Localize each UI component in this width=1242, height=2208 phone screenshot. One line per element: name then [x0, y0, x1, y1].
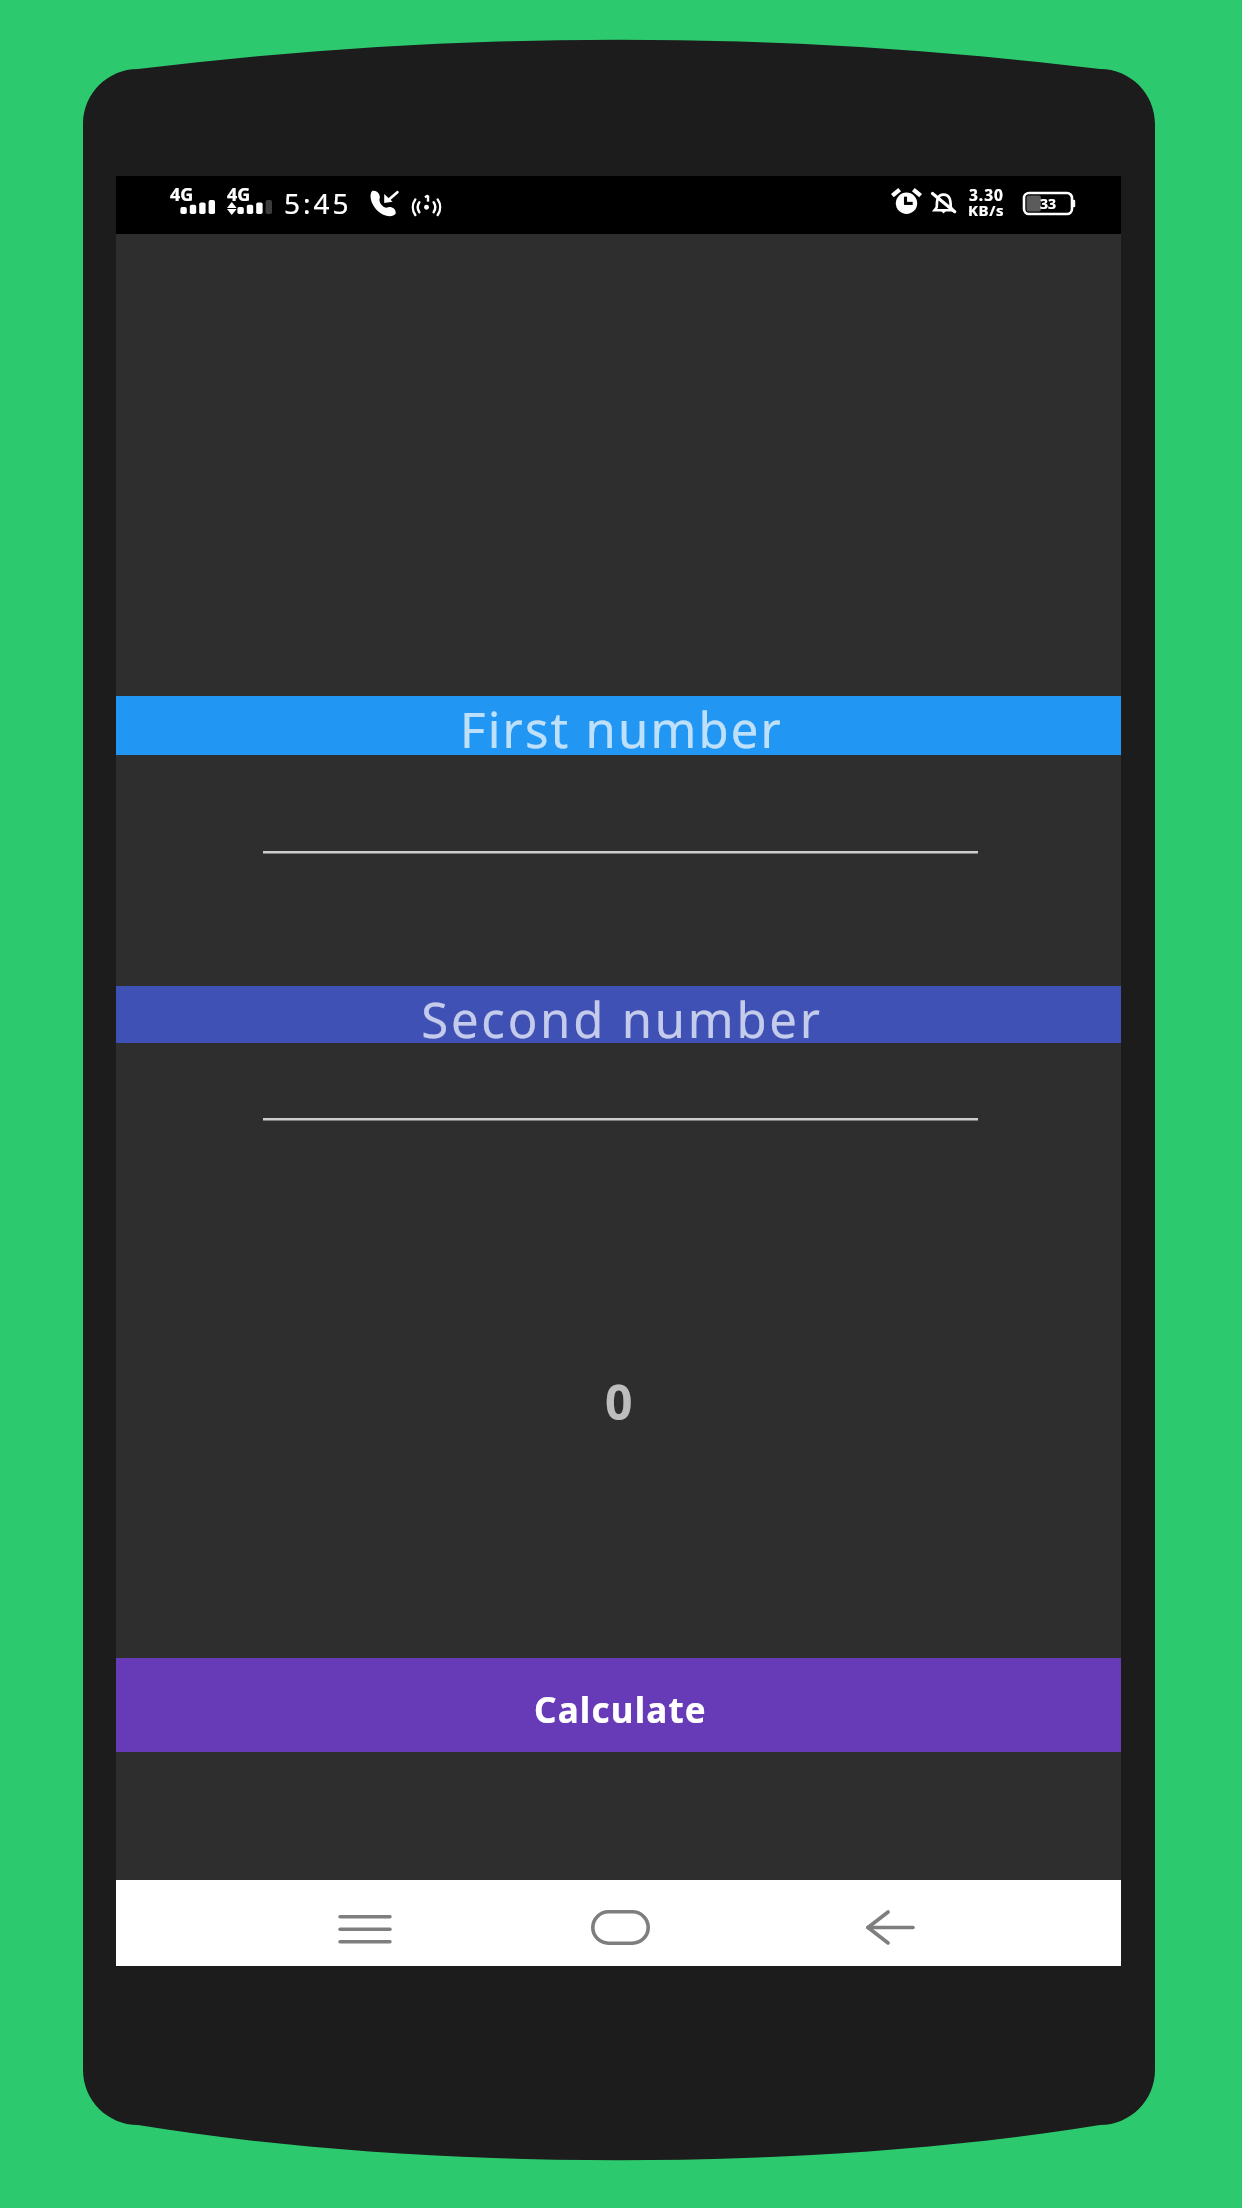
- button[interactable]: Second number: [116, 986, 1121, 1043]
- button[interactable]: Second number input: [263, 1062, 978, 1124]
- staticText: 5:45: [284, 184, 352, 222]
- staticText: KB/s: [968, 200, 1005, 220]
- staticText: Calculate: [534, 1686, 707, 1734]
- staticText: 0: [605, 1369, 633, 1434]
- button[interactable]: Home: [540, 1884, 700, 1970]
- staticText: 4G: [227, 182, 251, 207]
- staticText: 33: [1040, 194, 1057, 213]
- staticText: 4G: [170, 182, 194, 207]
- button[interactable]: Recent apps: [285, 1884, 445, 1970]
- button[interactable]: First number input: [263, 795, 978, 857]
- button[interactable]: Calculate: [116, 1658, 1121, 1752]
- staticText: Second number: [421, 986, 823, 1043]
- button[interactable]: First number: [116, 696, 1121, 755]
- button[interactable]: Back: [810, 1884, 970, 1970]
- staticText: 3.30: [969, 184, 1004, 205]
- staticText: First number: [460, 696, 783, 755]
